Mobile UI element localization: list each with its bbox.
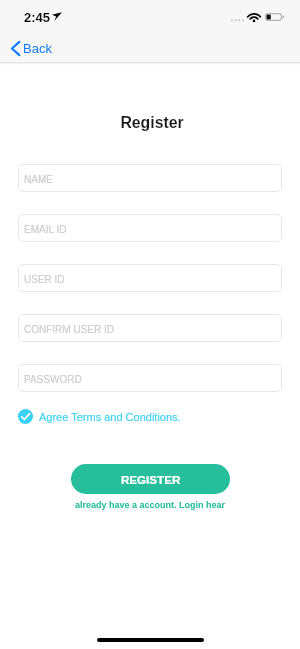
button[interactable]: NAME bbox=[18, 164, 282, 192]
staticText: EMAIL ID bbox=[24, 224, 67, 235]
button[interactable]: REGISTER bbox=[71, 464, 230, 494]
staticText: CONFIRM USER ID bbox=[24, 324, 114, 335]
staticText: REGISTER bbox=[121, 473, 181, 486]
staticText: Register bbox=[4, 114, 300, 132]
button[interactable]: PASSWORD bbox=[18, 364, 282, 392]
button[interactable]: Agree Terms and Conditions. bbox=[18, 409, 181, 424]
button[interactable]: already have a account. Login hear bbox=[0, 500, 300, 510]
staticText: Back bbox=[23, 41, 52, 56]
staticText: PASSWORD bbox=[24, 374, 82, 385]
button[interactable]: EMAIL ID bbox=[18, 214, 282, 242]
staticText: USER ID bbox=[24, 274, 65, 285]
staticText: 2:45 bbox=[24, 10, 51, 25]
staticText: NAME bbox=[24, 174, 53, 185]
staticText: Agree Terms and Conditions. bbox=[39, 411, 181, 423]
button[interactable]: Back bbox=[8, 39, 55, 58]
button[interactable]: CONFIRM USER ID bbox=[18, 314, 282, 342]
button[interactable]: USER ID bbox=[18, 264, 282, 292]
